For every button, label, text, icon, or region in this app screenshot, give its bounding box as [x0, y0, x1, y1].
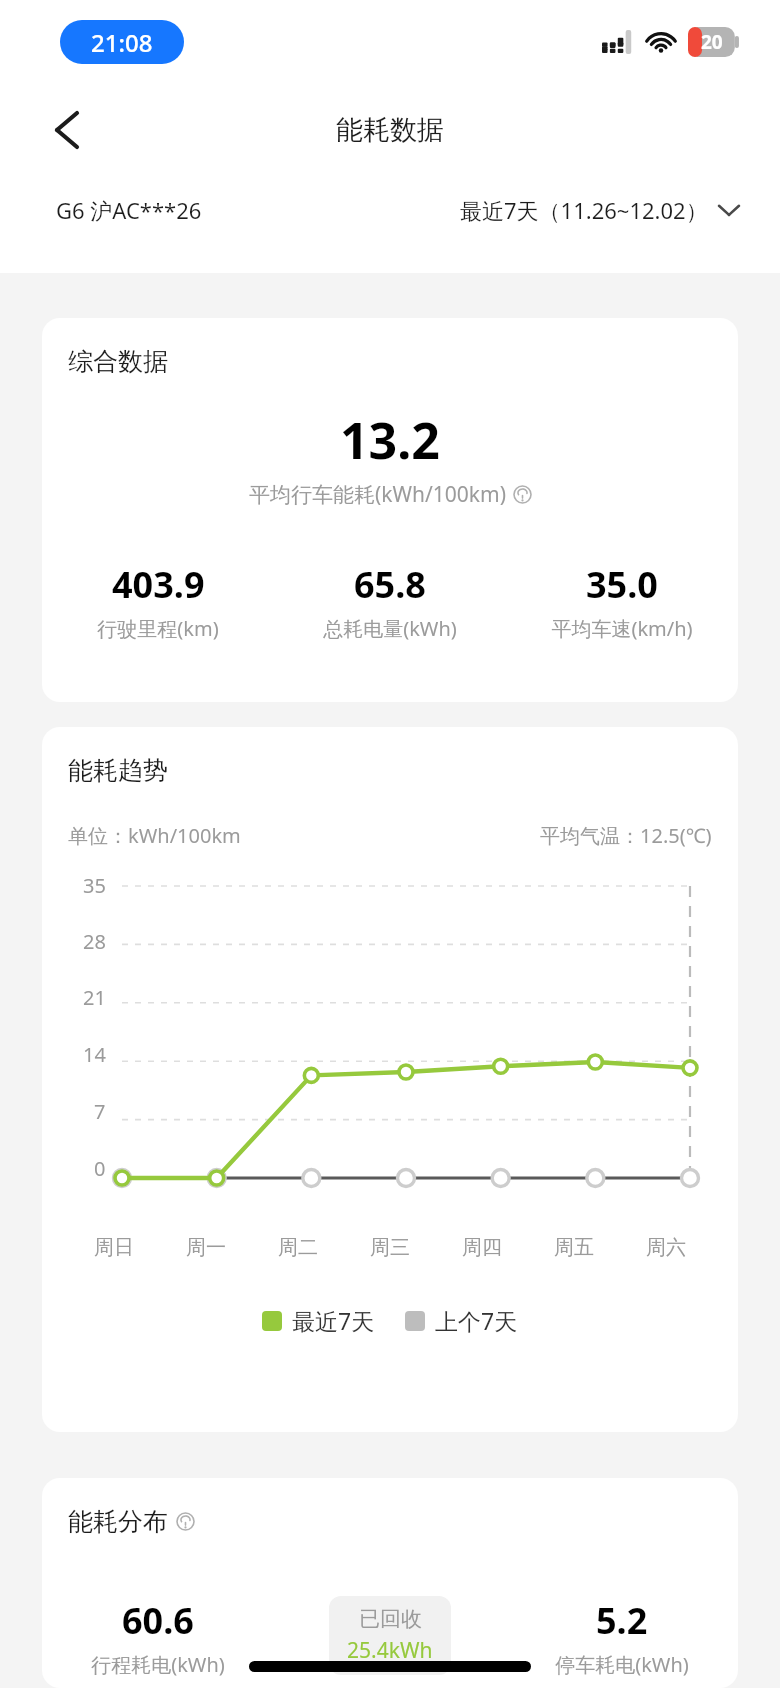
button[interactable]: 综合数据 [42, 318, 738, 702]
staticText: 周六 [620, 1235, 712, 1260]
staticText: 20 [701, 29, 723, 55]
button[interactable]: Back [38, 102, 94, 158]
staticText: G6 沪AC***26 [56, 195, 202, 225]
staticText: 综合数据 [68, 346, 168, 377]
staticText: 周日 [68, 1235, 160, 1260]
staticText: 0 [94, 1155, 106, 1182]
staticText: 60.6 [122, 1596, 194, 1645]
staticText: 21 [83, 984, 106, 1011]
staticText: 周三 [344, 1235, 436, 1260]
staticText: 已回收 [359, 1606, 422, 1632]
staticText: 周五 [528, 1235, 620, 1260]
staticText: 21:08 [91, 26, 153, 59]
button[interactable]: 能耗分布 [42, 1478, 738, 1688]
staticText: 行驶里程(km) [97, 615, 219, 642]
staticText: 周一 [160, 1235, 252, 1260]
staticText: 平均气温：12.5(℃) [540, 822, 712, 849]
button[interactable]: 最近7天（11.26~12.02） [460, 195, 740, 225]
staticText: 能耗数据 [336, 113, 444, 147]
staticText: 最近7天 [292, 1305, 375, 1336]
staticText: 能耗分布 [68, 1506, 168, 1537]
staticText: 总耗电量(kWh) [323, 615, 457, 642]
staticText: 行程耗电(kWh) [91, 1651, 225, 1678]
staticText: 最近7天（11.26~12.02） [460, 195, 708, 225]
staticText: 35.0 [586, 560, 658, 609]
staticText: 403.9 [112, 560, 205, 609]
staticText: 平均车速(km/h) [551, 615, 693, 642]
staticText: 上个7天 [435, 1305, 518, 1336]
staticText: 65.8 [354, 560, 426, 609]
staticText: 35 [83, 872, 106, 899]
staticText: 28 [83, 928, 106, 955]
staticText: 能耗趋势 [68, 755, 168, 786]
staticText: 周四 [436, 1235, 528, 1260]
staticText: 25.4kWh [347, 1636, 433, 1665]
staticText: 5.2 [596, 1596, 648, 1645]
button[interactable]: 能耗趋势 [42, 727, 738, 1432]
staticText: 7 [94, 1098, 106, 1125]
staticText: 14 [83, 1041, 106, 1068]
staticText: 停车耗电(kWh) [555, 1651, 689, 1678]
staticText: 单位：kWh/100km [68, 822, 241, 849]
staticText: 周二 [252, 1235, 344, 1260]
staticText: 平均行车能耗(kWh/100km) [249, 480, 507, 509]
staticText: 13.2 [340, 406, 440, 474]
